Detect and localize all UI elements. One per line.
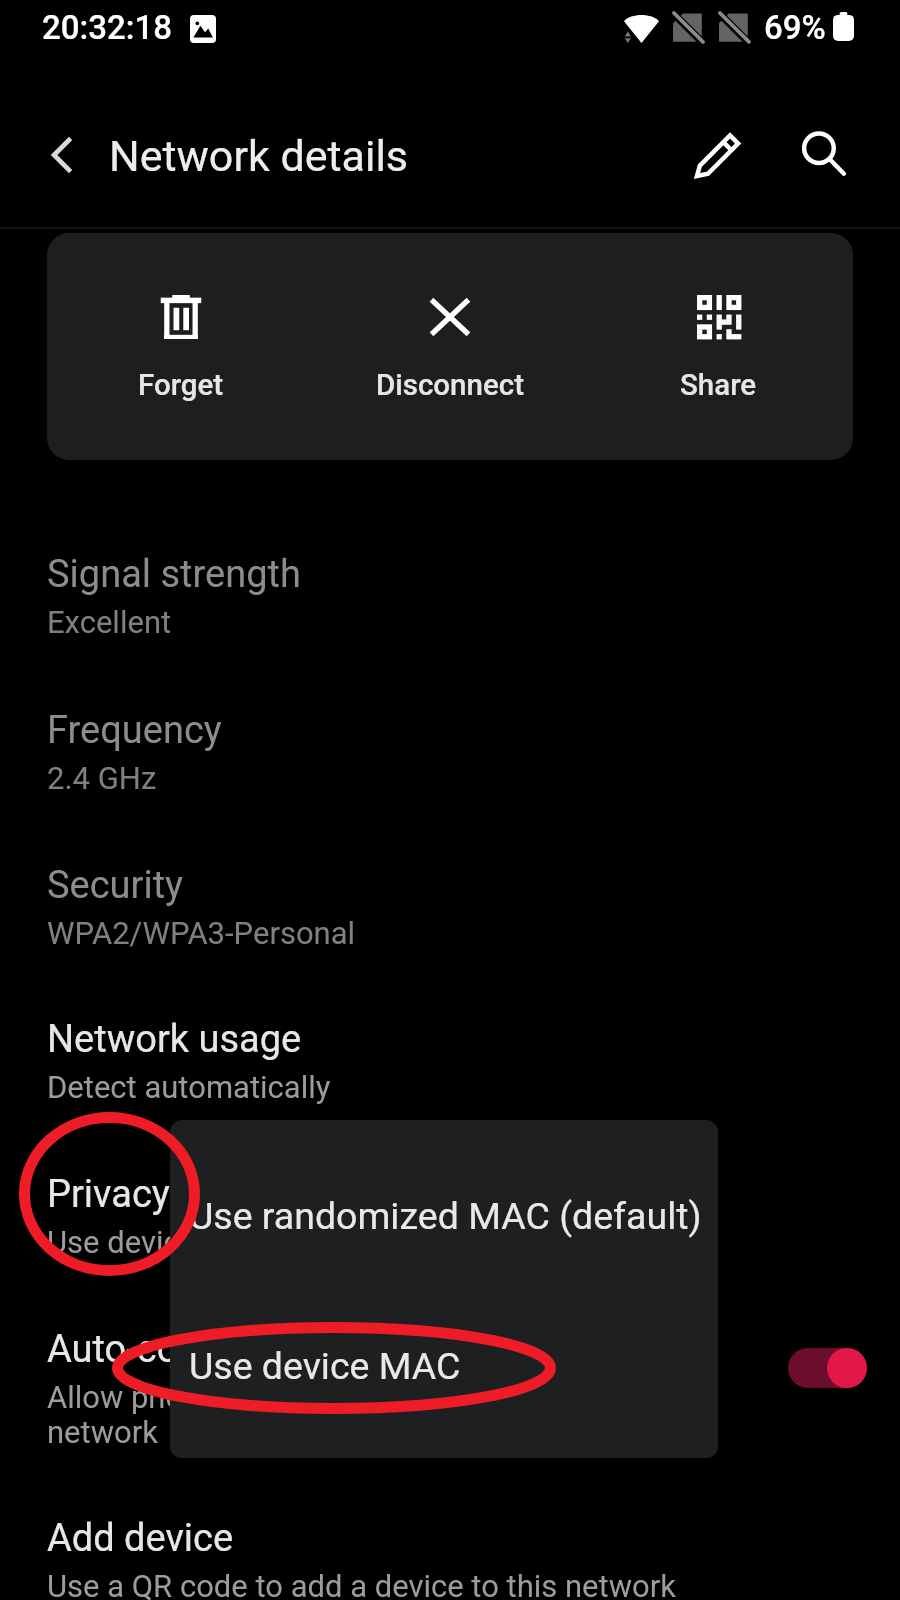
staticText: Excellent [47, 604, 172, 640]
button[interactable]: Use device MAC [170, 1326, 718, 1426]
staticText: Add device [47, 1516, 234, 1561]
button[interactable]: Search [794, 125, 852, 183]
button[interactable]: Share [584, 233, 853, 460]
button[interactable]: Use randomized MAC (default) [170, 1176, 718, 1276]
staticText: Frequency [47, 708, 222, 753]
button[interactable]: Signal strength [0, 534, 900, 674]
staticText: WPA2/WPA3-Personal [47, 915, 356, 951]
staticText: Use a QR code to add a device to this ne… [47, 1568, 676, 1600]
button[interactable]: Auto-connect [0, 1309, 900, 1449]
button[interactable]: Network usage [0, 999, 900, 1139]
staticText: Privacy [47, 1172, 170, 1217]
staticText: Disconnect [376, 368, 524, 403]
staticText: Use device MAC [189, 1344, 461, 1388]
button[interactable]: Disconnect [315, 233, 584, 460]
staticText: Forget [138, 368, 224, 403]
staticText: 20:32:18 [42, 8, 172, 47]
button[interactable]: Auto-connect toggle [770, 1333, 886, 1403]
staticText: Detect automatically [47, 1069, 331, 1105]
staticText: Use device MAC [47, 1224, 272, 1260]
staticText: Share [680, 368, 757, 403]
staticText: Use randomized MAC (default) [189, 1194, 702, 1238]
staticText: Network usage [47, 1017, 302, 1062]
staticText: Network details [109, 131, 409, 181]
staticText: Signal strength [47, 552, 301, 597]
button[interactable]: Security [0, 845, 900, 985]
staticText: 69% [764, 8, 826, 47]
staticText: Allow phone to connect to this network [47, 1379, 465, 1450]
button[interactable]: Privacy [0, 1154, 900, 1294]
staticText: 2.4 GHz [47, 760, 157, 796]
staticText: Security [47, 863, 184, 908]
button[interactable]: Add device [0, 1498, 900, 1600]
button[interactable]: Edit [690, 125, 748, 183]
button[interactable]: Back [32, 125, 90, 183]
button[interactable]: Forget [47, 233, 315, 460]
staticText: Auto-connect [47, 1327, 273, 1372]
button[interactable]: Frequency [0, 690, 900, 830]
